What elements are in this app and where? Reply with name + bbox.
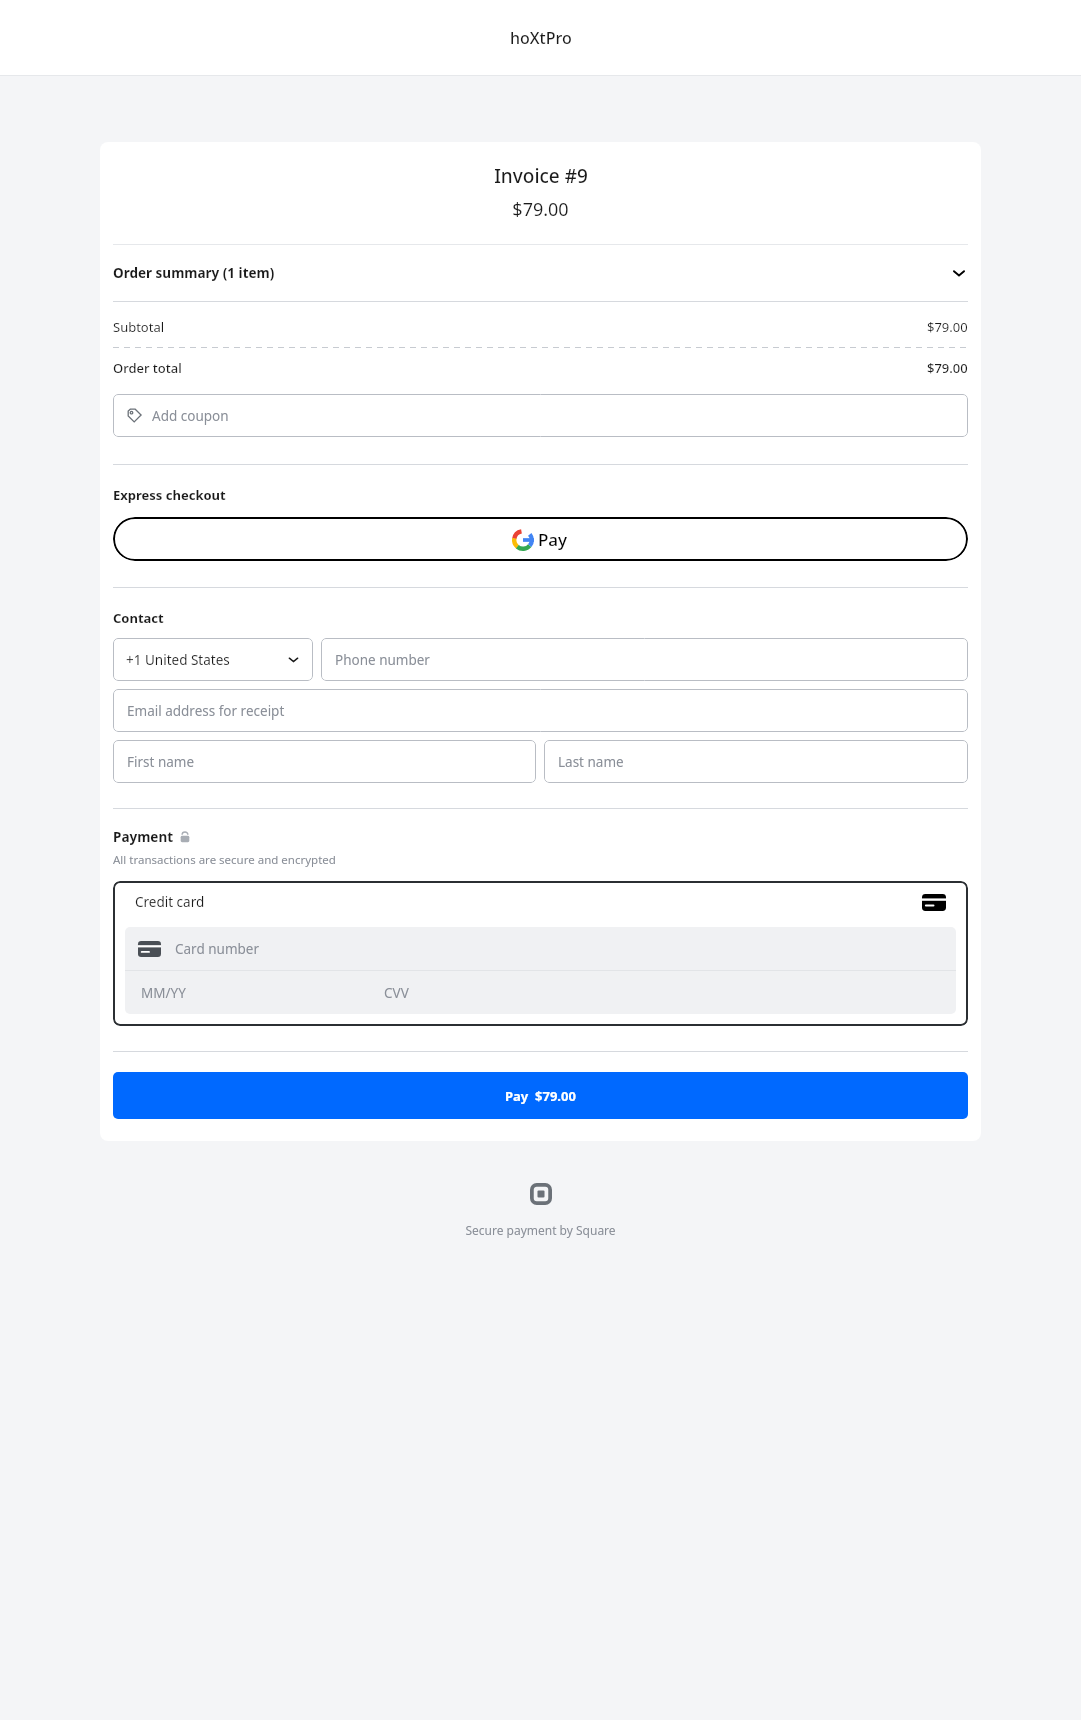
staticText: hoXtPro xyxy=(510,27,572,49)
staticText: Credit card xyxy=(135,893,205,911)
staticText: Order total xyxy=(113,359,182,377)
staticText: +1 United States xyxy=(126,651,230,669)
staticText: $79.00 xyxy=(512,197,569,222)
staticText: Pay xyxy=(538,528,568,551)
staticText: First name xyxy=(127,753,195,771)
staticText: Last name xyxy=(558,753,624,771)
staticText: CVV xyxy=(384,984,409,1002)
staticText: All transactions are secure and encrypte… xyxy=(113,852,336,868)
staticText: Add coupon xyxy=(152,407,229,425)
staticText: Card number xyxy=(175,940,260,958)
button[interactable]: Last name xyxy=(544,740,968,783)
button[interactable]: Order summary (1 item) xyxy=(113,245,968,301)
staticText: Order summary (1 item) xyxy=(113,264,275,282)
button[interactable]: +1 United States xyxy=(113,638,313,681)
staticText: Contact xyxy=(113,609,164,627)
button[interactable]: Pay $79.00 xyxy=(113,1072,968,1119)
staticText: Phone number xyxy=(335,651,430,669)
staticText: Subtotal xyxy=(113,318,165,336)
staticText: Payment xyxy=(113,828,174,846)
button[interactable]: Card number xyxy=(125,927,956,970)
staticText: Pay $79.00 xyxy=(505,1087,576,1105)
button[interactable]: MM/YY xyxy=(125,971,956,1014)
button[interactable]: Email address for receipt xyxy=(113,689,968,732)
button[interactable]: Add coupon xyxy=(113,394,968,437)
button[interactable]: Credit card xyxy=(113,881,968,1026)
staticText: $79.00 xyxy=(927,359,968,377)
button[interactable]: First name xyxy=(113,740,536,783)
staticText: $79.00 xyxy=(927,318,968,336)
button[interactable]: Phone number xyxy=(321,638,968,681)
staticText: MM/YY xyxy=(141,984,186,1002)
button[interactable]: Pay with Google Pay xyxy=(113,517,968,561)
staticText: Express checkout xyxy=(113,486,226,504)
staticText: Email address for receipt xyxy=(127,702,285,720)
staticText: Secure payment by Square xyxy=(465,1222,616,1238)
staticText: Invoice #9 xyxy=(494,163,588,189)
